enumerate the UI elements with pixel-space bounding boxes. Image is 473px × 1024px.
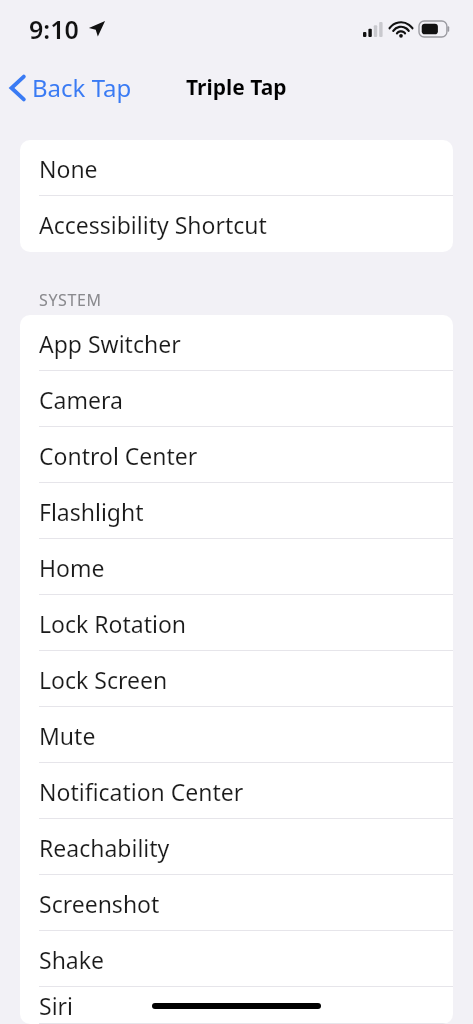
button[interactable]: Siri: [20, 987, 453, 1024]
staticText: Notification Center: [39, 776, 244, 807]
staticText: None: [39, 153, 98, 184]
staticText: 9:10: [29, 12, 79, 46]
staticText: Flashlight: [39, 496, 144, 527]
staticText: Back Tap: [32, 71, 132, 104]
button[interactable]: App Switcher: [20, 315, 453, 371]
staticText: Accessibility Shortcut: [39, 209, 267, 240]
button[interactable]: Notification Center: [20, 763, 453, 819]
staticText: Screenshot: [39, 888, 160, 919]
button[interactable]: Lock Screen: [20, 651, 453, 707]
button[interactable]: Camera: [20, 371, 453, 427]
staticText: Lock Screen: [39, 664, 168, 695]
button[interactable]: Lock Rotation: [20, 595, 453, 651]
staticText: Triple Tap: [186, 73, 287, 102]
staticText: Mute: [39, 720, 96, 751]
staticText: SYSTEM: [39, 289, 102, 311]
button[interactable]: Mute: [20, 707, 453, 763]
staticText: Camera: [39, 384, 123, 415]
button[interactable]: Control Center: [20, 427, 453, 483]
button[interactable]: Flashlight: [20, 483, 453, 539]
button[interactable]: Screenshot: [20, 875, 453, 931]
staticText: App Switcher: [39, 328, 181, 359]
staticText: Shake: [39, 944, 104, 975]
button[interactable]: None: [20, 140, 453, 196]
staticText: Lock Rotation: [39, 608, 187, 639]
staticText: Home: [39, 552, 105, 583]
button[interactable]: Shake: [20, 931, 453, 987]
button[interactable]: Home: [20, 539, 453, 595]
button[interactable]: Reachability: [20, 819, 453, 875]
staticText: Siri: [39, 990, 73, 1021]
button[interactable]: Accessibility Shortcut: [20, 196, 453, 252]
staticText: Control Center: [39, 440, 198, 471]
staticText: Reachability: [39, 832, 170, 863]
button[interactable]: Back to Back Tap: [0, 65, 144, 110]
